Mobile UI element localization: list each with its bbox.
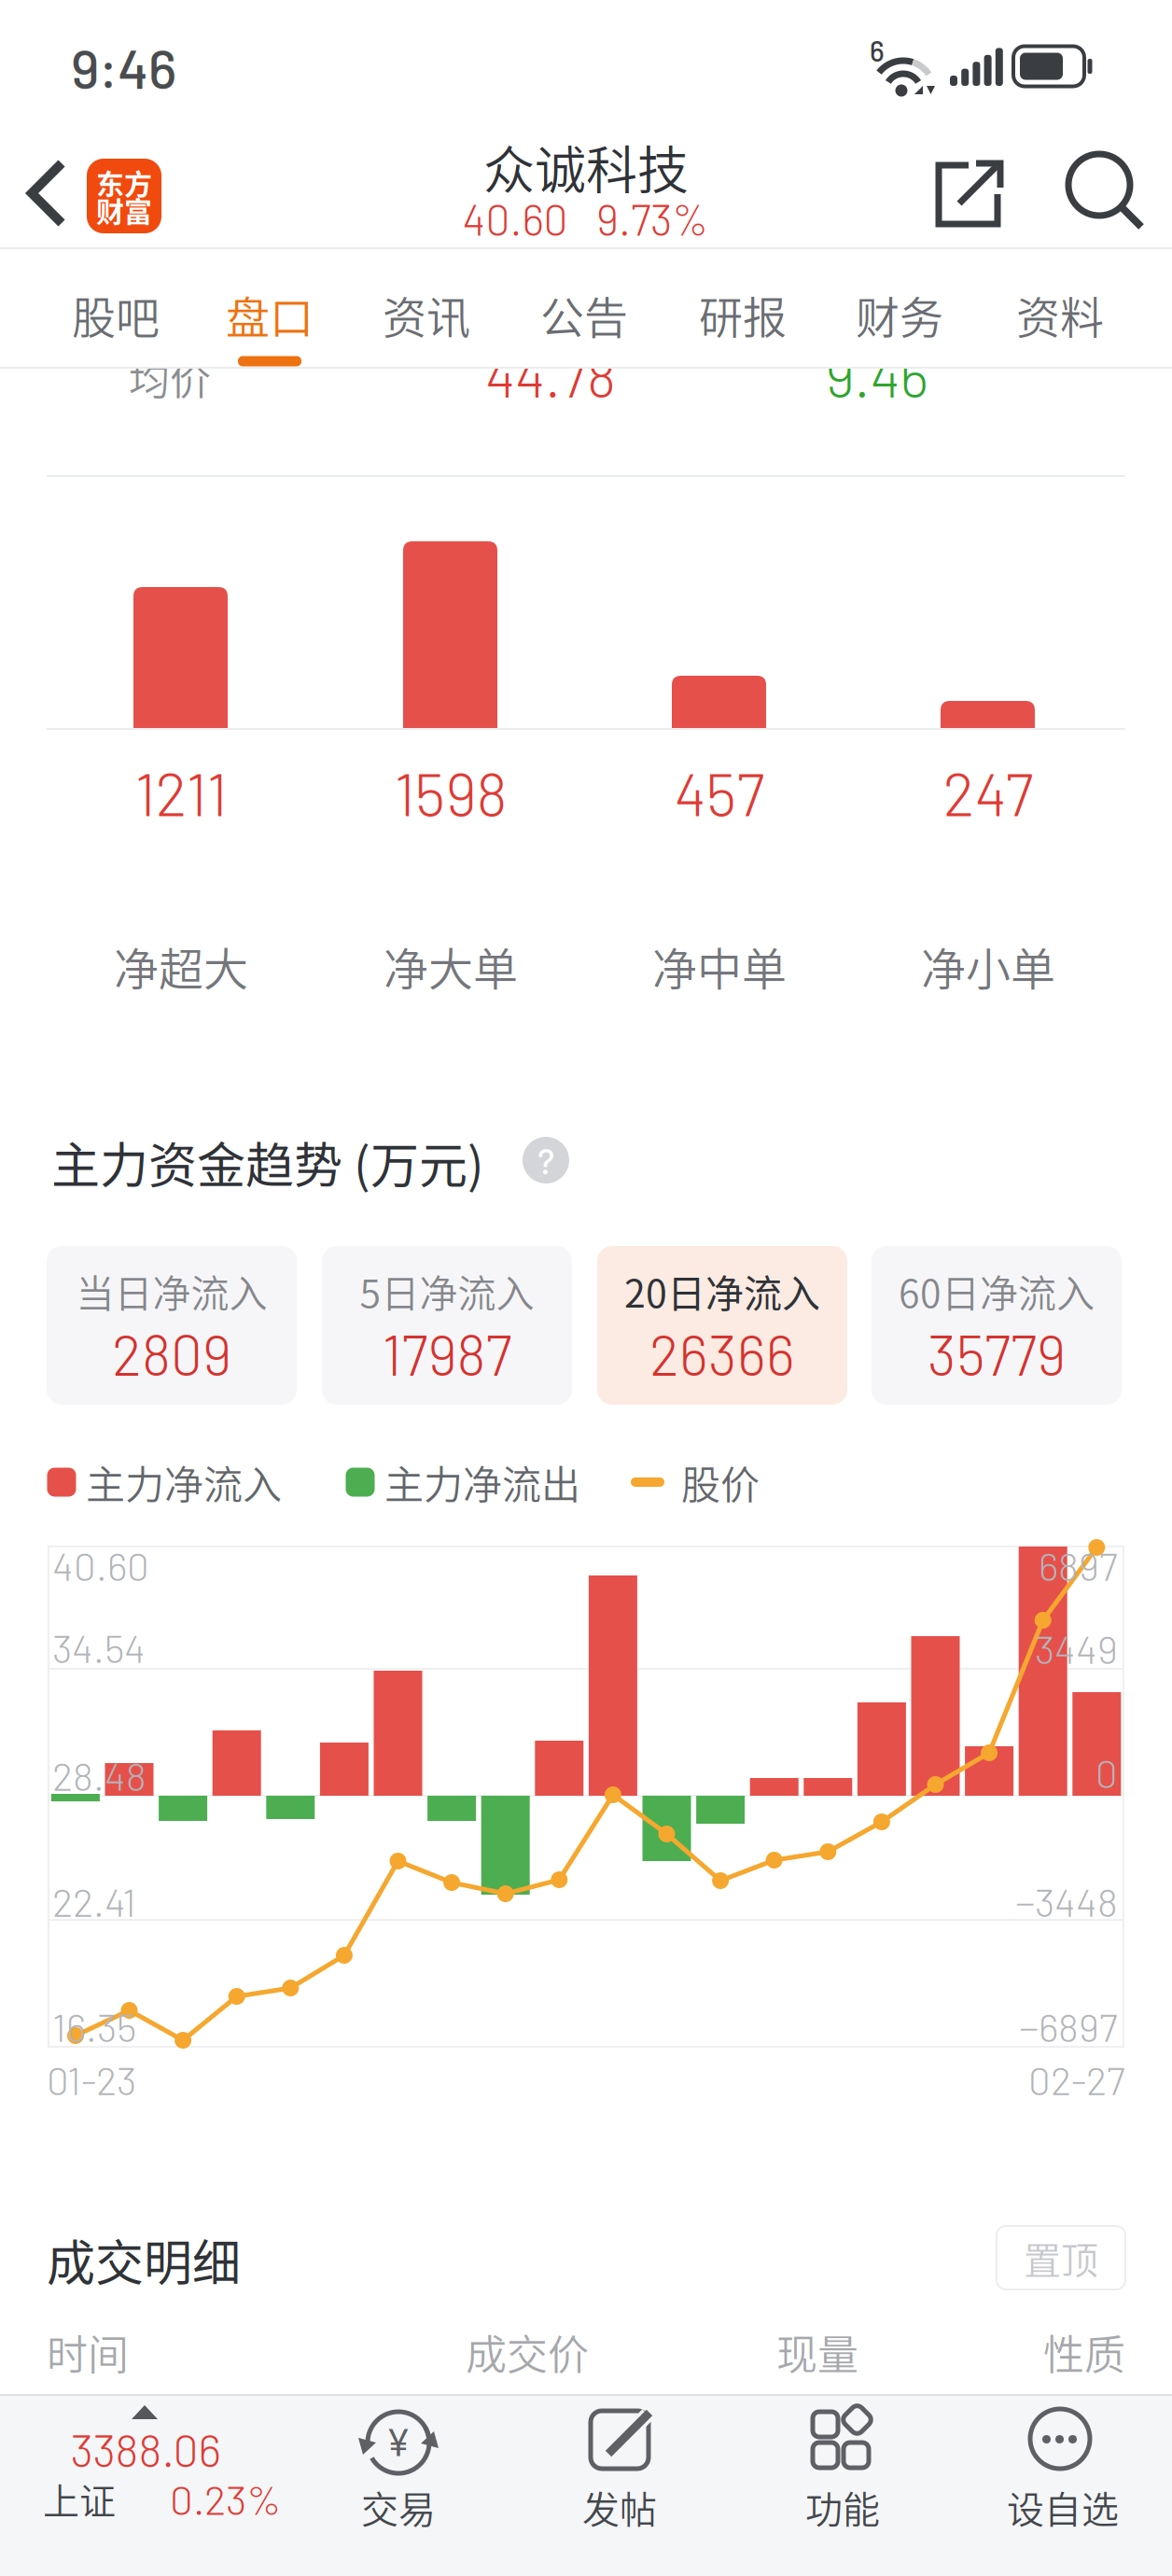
button[interactable]	[1057, 143, 1151, 236]
staticText: 40.60	[52, 1542, 149, 1589]
staticText: 22.41	[52, 1878, 136, 1925]
button[interactable]: 研报	[673, 259, 813, 371]
staticText: 2809	[112, 1320, 231, 1387]
staticText: 34.54	[52, 1624, 146, 1671]
button[interactable]: 发帖	[504, 2394, 735, 2576]
staticText: 17987	[382, 1320, 512, 1387]
staticText: 01-23	[47, 2056, 136, 2103]
button[interactable]	[9, 142, 84, 245]
staticText: 净大单	[384, 934, 518, 998]
staticText: 东方	[96, 162, 152, 203]
staticText: 5日净流入	[360, 1263, 534, 1319]
button[interactable]: 60日净流入	[872, 1246, 1122, 1405]
staticText: 时间	[47, 2322, 129, 2382]
staticText: ?	[537, 1139, 554, 1181]
staticText: 20日净流入	[624, 1263, 820, 1319]
staticText: 交易	[361, 2480, 436, 2534]
button[interactable]: 功能	[727, 2394, 958, 2576]
staticText: 功能	[805, 2480, 880, 2534]
staticText: 股价	[681, 1454, 760, 1511]
staticText: 现量	[776, 2322, 858, 2382]
staticText: 02-27	[1028, 2056, 1125, 2103]
staticText: 3388.06	[70, 2422, 221, 2476]
button[interactable]: ?	[523, 1137, 569, 1183]
button[interactable]: 东方	[87, 159, 161, 233]
staticText: 0	[1095, 1749, 1118, 1796]
staticText: 财务	[856, 283, 943, 346]
staticText: 247	[943, 757, 1033, 828]
staticText: 上证	[43, 2472, 116, 2525]
button[interactable]: 财务	[830, 259, 970, 371]
staticText: 60日净流入	[899, 1263, 1095, 1319]
staticText: 主力资金趋势 (万元)	[51, 1127, 484, 1197]
staticText: 财富	[96, 189, 152, 230]
staticText: −3448	[1015, 1878, 1118, 1925]
staticText: 9:46	[71, 35, 176, 100]
staticText: 6	[870, 34, 885, 67]
staticText: −6897	[1019, 2003, 1118, 2050]
button[interactable]: 股吧	[46, 259, 186, 371]
staticText: 众诚科技	[483, 129, 689, 203]
staticText: 资讯	[383, 283, 470, 346]
button[interactable]: 资料	[990, 259, 1130, 371]
button[interactable]: 资讯	[356, 259, 496, 371]
staticText: 净中单	[652, 934, 787, 998]
button[interactable]	[922, 147, 1015, 241]
staticText: 设自选	[1007, 2480, 1119, 2534]
button[interactable]: 设自选	[945, 2394, 1172, 2576]
staticText: 0.23%	[170, 2474, 282, 2523]
button[interactable]: 20日净流入	[597, 1246, 847, 1405]
staticText: 性质	[1043, 2322, 1125, 2382]
staticText: 资料	[1016, 283, 1104, 346]
staticText: 26366	[649, 1320, 795, 1387]
staticText: 公告	[540, 283, 628, 346]
button[interactable]: 当日净流入	[47, 1246, 297, 1405]
staticText: 35779	[928, 1320, 1066, 1387]
button[interactable]: 3388.06	[29, 2394, 260, 2576]
staticText: 当日净流入	[76, 1263, 267, 1319]
staticText: 44.78	[485, 342, 616, 409]
button[interactable]: 置顶	[997, 2226, 1125, 2289]
staticText: 16.35	[52, 2003, 136, 2050]
staticText: 主力净流出	[384, 1454, 580, 1511]
staticText: ¥	[389, 2420, 408, 2465]
staticText: 28.48	[52, 1752, 146, 1799]
staticText: 研报	[699, 283, 787, 346]
button[interactable]: 5日净流入	[322, 1246, 572, 1405]
staticText: 9.73%	[596, 193, 708, 244]
staticText: 净超大	[114, 934, 248, 998]
staticText: 9.46	[825, 342, 929, 409]
button[interactable]: 公告	[514, 259, 654, 371]
staticText: 置顶	[1024, 2231, 1098, 2285]
staticText: 主力净流入	[86, 1454, 282, 1511]
staticText: 1598	[394, 757, 507, 828]
staticText: 盘口	[226, 283, 314, 346]
button[interactable]: 盘口	[200, 259, 340, 371]
staticText: 发帖	[582, 2480, 657, 2534]
staticText: 3449	[1035, 1625, 1118, 1672]
staticText: 6897	[1039, 1542, 1118, 1589]
button[interactable]: ¥	[283, 2394, 514, 2576]
staticText: 成交价	[466, 2322, 589, 2382]
staticText: 1211	[135, 757, 227, 828]
staticText: 成交明细	[47, 2225, 241, 2295]
staticText: 均价	[129, 347, 211, 407]
staticText: 股吧	[72, 283, 160, 346]
staticText: 457	[674, 757, 765, 828]
staticText: 40.60	[462, 193, 568, 244]
staticText: 净小单	[921, 934, 1055, 998]
